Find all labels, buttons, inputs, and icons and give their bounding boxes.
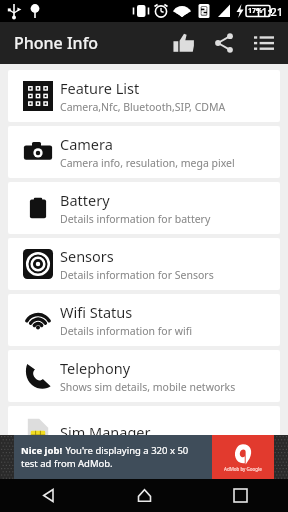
button[interactable]: Recent apps xyxy=(192,479,288,512)
button[interactable]: Camera xyxy=(8,126,280,178)
button[interactable]: More options xyxy=(244,23,284,63)
button[interactable]: Share xyxy=(204,23,244,63)
button[interactable]: Sensors xyxy=(8,238,280,290)
staticText: Feature List xyxy=(60,78,140,98)
staticText: AdMob by Google xyxy=(224,466,262,472)
button[interactable]: Back xyxy=(0,479,96,512)
staticText: You're displaying a 320 x 50 xyxy=(63,444,189,457)
button[interactable]: Battery xyxy=(8,182,280,234)
button[interactable]: Home xyxy=(96,479,192,512)
button[interactable]: AdMob by Google xyxy=(212,435,274,479)
staticText: Telephony xyxy=(60,358,131,378)
button[interactable]: Wifi Status xyxy=(8,294,280,346)
staticText: Sim Manager xyxy=(60,422,151,442)
staticText: Details information for battery xyxy=(60,212,211,226)
staticText: Camera xyxy=(60,134,113,154)
staticText: Shows sim details, mobile networks xyxy=(60,380,236,394)
staticText: Nice job! xyxy=(21,444,63,457)
button[interactable]: Telephony xyxy=(8,350,280,402)
staticText: Camera,Nfc, Bluetooth,SIP, CDMA xyxy=(60,100,226,114)
staticText: Wifi Status xyxy=(60,302,133,322)
staticText: Camera info, resulation, mega pixel xyxy=(60,156,235,170)
staticText: Battery xyxy=(60,190,110,210)
button[interactable]: Feature List xyxy=(8,70,280,122)
staticText: test ad from AdMob. xyxy=(21,457,113,470)
staticText: 11:21 xyxy=(255,4,284,19)
button[interactable]: Nice job! xyxy=(21,435,205,479)
button[interactable]: Sim Manager xyxy=(8,406,280,458)
button[interactable]: Rate app xyxy=(164,23,204,63)
staticText: Phone Info xyxy=(14,32,99,54)
staticText: Details information for wifi xyxy=(60,324,193,338)
staticText: Details information for Sensors xyxy=(60,268,214,282)
staticText: 17% xyxy=(248,6,263,16)
staticText: Sensors xyxy=(60,246,114,266)
